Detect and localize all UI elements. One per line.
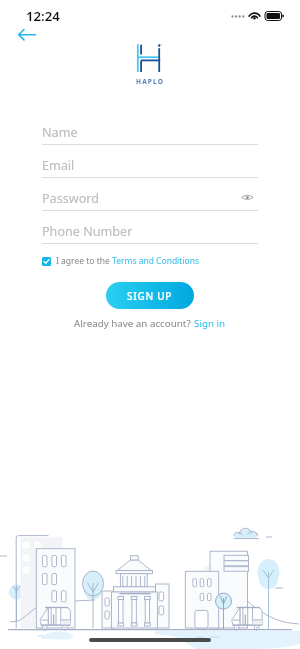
button[interactable]: SIGN UP [106, 282, 194, 309]
button[interactable]: Phone Number [42, 211, 258, 244]
button[interactable]: I agree to the [42, 255, 200, 267]
button[interactable]: Sign in [194, 317, 226, 330]
button[interactable]: Name [42, 112, 258, 145]
staticText: Already have an account? [74, 317, 194, 330]
staticText: 12:24 [26, 7, 60, 25]
staticText: SIGN UP [127, 289, 173, 303]
button[interactable]: Show password [240, 193, 254, 203]
staticText: I agree to the [56, 255, 112, 267]
staticText: Phone Number [42, 223, 133, 240]
staticText: Password [42, 190, 99, 207]
staticText: Email [42, 157, 75, 174]
staticText: Name [42, 124, 78, 141]
button[interactable]: Password [42, 178, 258, 211]
staticText: HAPLO [136, 77, 164, 86]
button[interactable]: Email [42, 145, 258, 178]
button[interactable]: Back [12, 22, 42, 48]
button[interactable]: Terms and Conditions [112, 255, 200, 267]
